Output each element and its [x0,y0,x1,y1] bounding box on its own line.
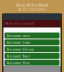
staticText: Answer three [6,46,33,52]
staticText: Which one is correct? [5,22,34,25]
staticText: Answer five [6,60,29,65]
staticText: tap the right answer [18,8,46,11]
staticText: Quiz of the Week [16,2,48,8]
staticText: Answer one [6,33,29,38]
staticText: Answer two [6,40,29,45]
button[interactable]: Answer two [4,39,59,45]
button[interactable]: Answer four [4,53,59,59]
button[interactable]: Answer three [4,46,59,52]
button[interactable]: Answer five [4,60,59,66]
staticText: Answer four [6,53,30,58]
button[interactable]: Answer one [4,32,59,38]
